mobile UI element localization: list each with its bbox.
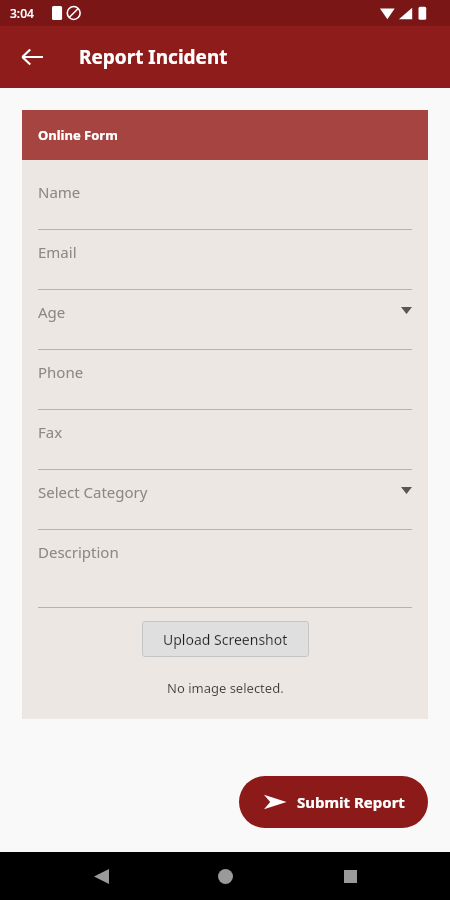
button[interactable]: Email [38,230,412,290]
button[interactable]: Submit Report [239,776,428,828]
staticText: Online Form [38,126,118,144]
staticText: Name [38,182,81,202]
staticText: Select Category [38,482,148,502]
button[interactable]: Upload Screenshot [142,621,309,657]
button[interactable]: Fax [38,410,412,470]
staticText: Age [38,302,66,322]
staticText: Email [38,242,77,262]
button[interactable]: Select Category [38,470,412,530]
staticText: Submit Report [297,792,405,812]
button[interactable]: Back [77,852,125,900]
button[interactable]: Age [38,290,412,350]
staticText: Report Incident [79,44,228,70]
staticText: Phone [38,362,84,382]
button[interactable]: Back [10,35,54,79]
staticText: Upload Screenshot [163,630,288,649]
button[interactable]: Name [38,170,412,230]
button[interactable]: Phone [38,350,412,410]
button[interactable]: Home [201,852,249,900]
staticText: No image selected. [167,679,284,697]
button[interactable]: Description [38,530,412,608]
button[interactable]: Recents [326,852,374,900]
staticText: 3:04 [10,5,34,21]
staticText: Description [38,542,119,562]
staticText: Fax [38,422,63,442]
